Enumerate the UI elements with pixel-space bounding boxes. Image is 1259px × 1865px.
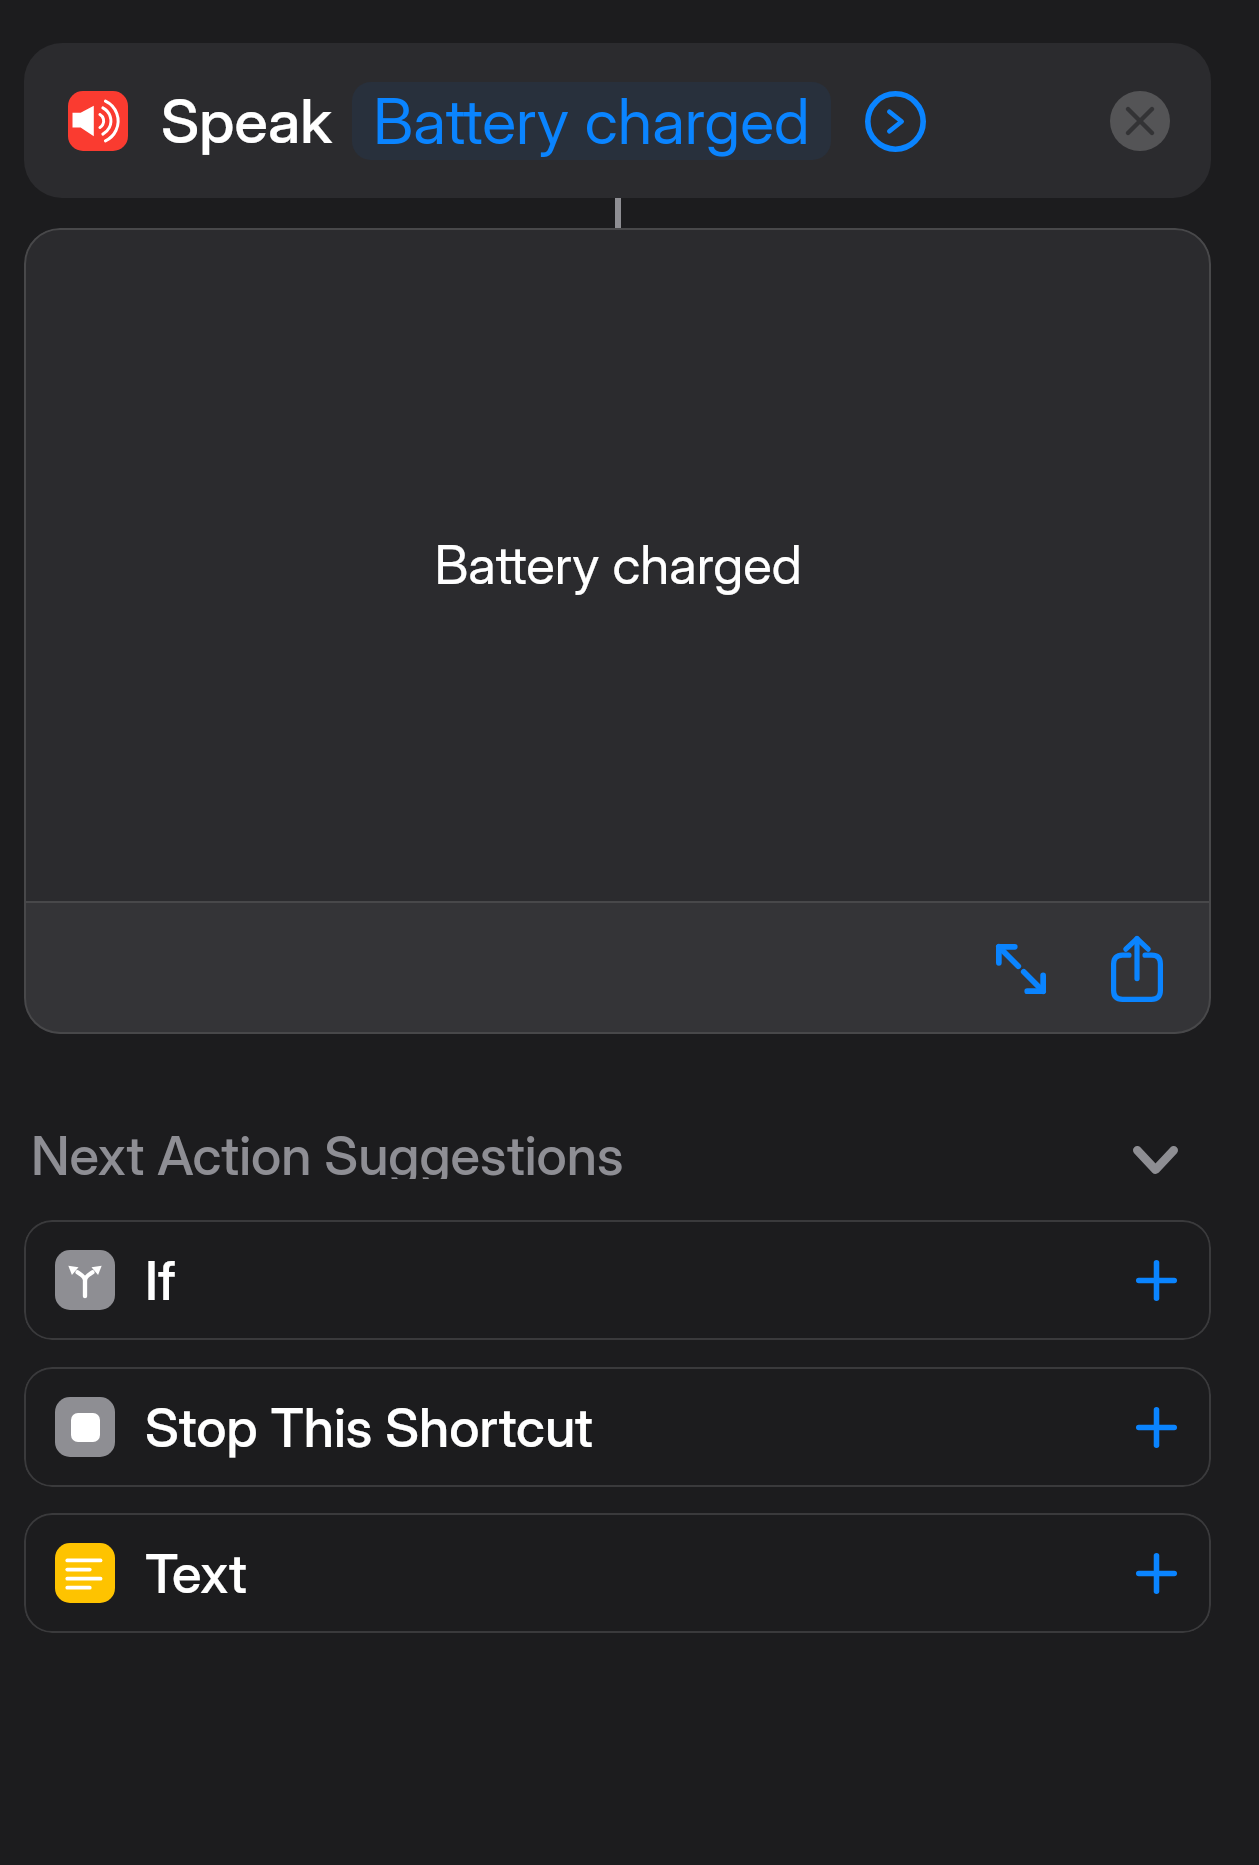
button[interactable]: Text xyxy=(24,1513,1211,1633)
button[interactable]: Stop This Shortcut xyxy=(24,1367,1211,1487)
button[interactable]: Battery charged xyxy=(352,82,831,160)
staticText: Battery charged xyxy=(373,83,810,159)
button[interactable]: Add Text action xyxy=(1121,1538,1191,1608)
button[interactable]: Add Stop This Shortcut action xyxy=(1121,1392,1191,1462)
staticText: Next Action Suggestions xyxy=(31,1123,624,1179)
button[interactable]: Open details xyxy=(860,86,930,156)
staticText: Battery charged xyxy=(434,533,802,597)
button[interactable]: Collapse suggestions xyxy=(1127,1132,1183,1188)
button[interactable]: Expand xyxy=(978,926,1064,1012)
button[interactable]: Share xyxy=(1094,926,1180,1012)
button[interactable]: If xyxy=(24,1220,1211,1340)
button[interactable]: Add If action xyxy=(1121,1245,1191,1315)
button[interactable]: Remove action xyxy=(1110,91,1170,151)
staticText: If xyxy=(145,1248,176,1313)
staticText: Stop This Shortcut xyxy=(145,1395,593,1460)
staticText: Speak xyxy=(161,84,333,158)
button[interactable]: Next Action Suggestions xyxy=(31,1123,1183,1179)
staticText: Text xyxy=(145,1541,247,1606)
button[interactable]: Speak xyxy=(24,43,1211,198)
